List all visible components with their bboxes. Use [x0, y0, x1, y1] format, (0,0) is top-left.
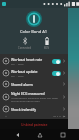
staticText: Unbind pairwise — [21, 122, 48, 127]
button[interactable]: Back — [12, 129, 23, 140]
staticText: 80% — [44, 46, 50, 50]
staticText: Shared alarm — [11, 82, 33, 87]
button[interactable]: Night ECG measured — [0, 89, 68, 104]
staticText: Automatically measures while you sleep a… — [11, 96, 61, 102]
staticText: ON · auto — [11, 62, 24, 65]
button[interactable]: Recents — [57, 129, 68, 140]
button[interactable]: Workout update toggle — [52, 71, 61, 76]
staticText: Shock indentify — [11, 107, 36, 112]
staticText: ON · auto — [11, 74, 24, 77]
button[interactable]: Workout update — [0, 67, 68, 79]
button[interactable]: Workout heart rate toggle — [52, 59, 61, 64]
staticText: V1.6.0 — [53, 116, 61, 117]
button[interactable]: Workout heart rate — [0, 55, 68, 67]
staticText: Workout update — [11, 69, 38, 74]
button[interactable]: Date center — [0, 114, 68, 119]
staticText: Connected — [18, 46, 32, 50]
button[interactable]: Shared alarm — [0, 79, 68, 89]
staticText: Workout heart rate — [11, 57, 43, 62]
staticText: Color Band A1 — [20, 29, 48, 34]
button[interactable]: Unbind pairwise — [5, 121, 63, 127]
button[interactable]: Shock indentify — [0, 104, 68, 114]
button[interactable]: Home — [34, 129, 45, 140]
staticText: Night ECG measured — [11, 91, 45, 96]
